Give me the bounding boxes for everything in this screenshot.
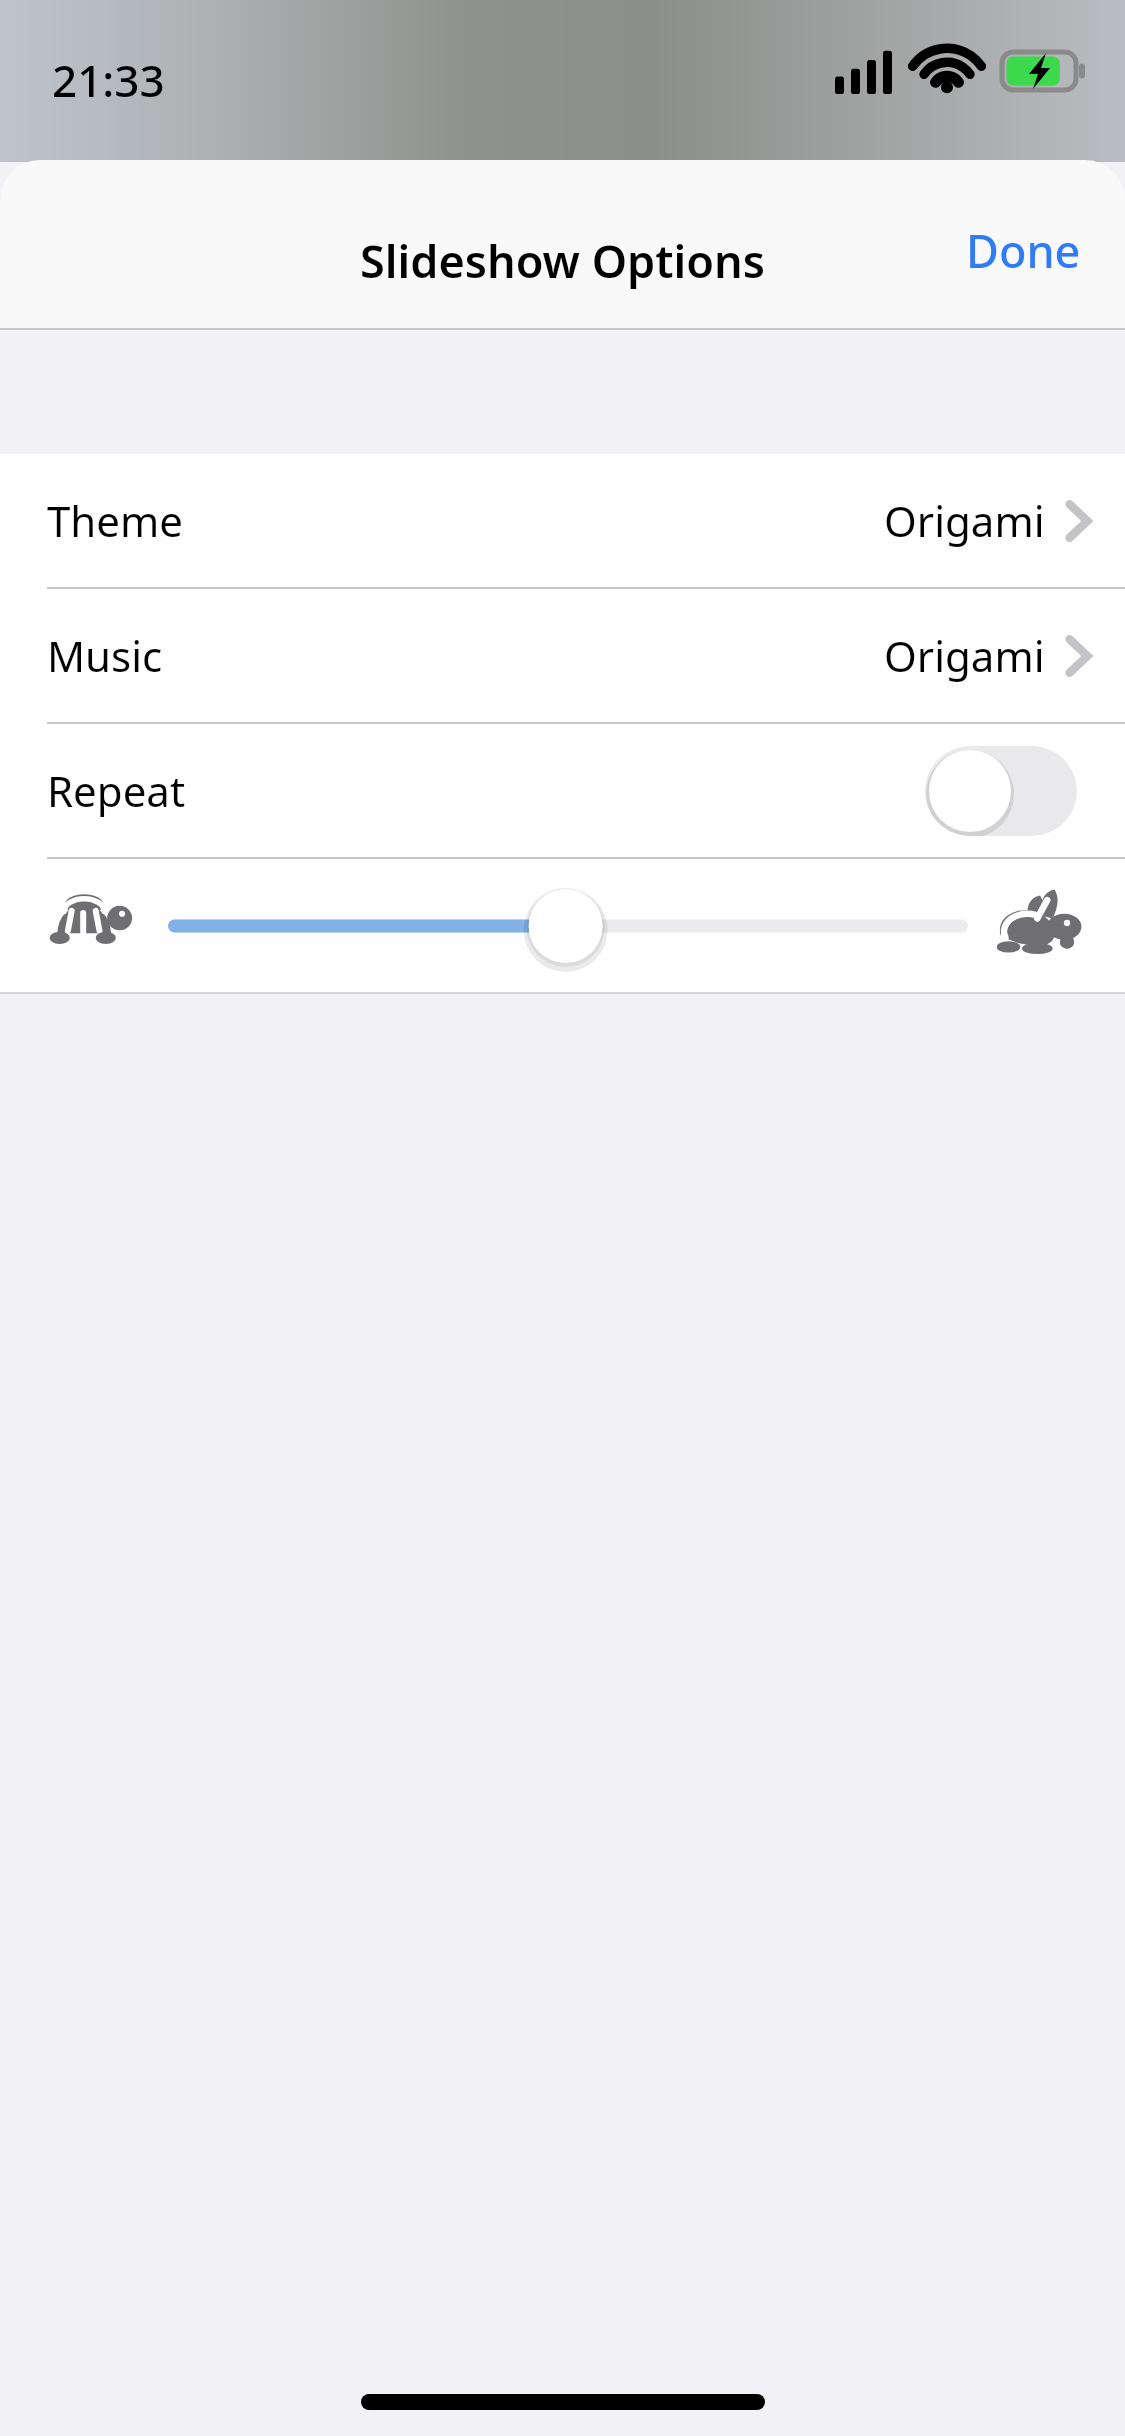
staticText: Slideshow Options bbox=[0, 230, 1125, 291]
other: Faster bbox=[995, 888, 1085, 964]
staticText: Origami bbox=[884, 627, 1045, 684]
button[interactable]: Music bbox=[0, 589, 1125, 722]
button[interactable]: Repeat off bbox=[925, 746, 1077, 836]
staticText: Music bbox=[47, 627, 163, 684]
other: Slower bbox=[40, 890, 136, 962]
button[interactable]: Slideshow speed bbox=[168, 881, 968, 971]
button[interactable]: Done bbox=[946, 208, 1101, 293]
button[interactable]: Theme bbox=[0, 454, 1125, 587]
staticText: Origami bbox=[884, 492, 1045, 549]
staticText: Theme bbox=[47, 492, 183, 549]
staticText: Done bbox=[966, 220, 1081, 281]
staticText: Repeat bbox=[47, 762, 186, 819]
staticText: 21:33 bbox=[52, 50, 165, 110]
